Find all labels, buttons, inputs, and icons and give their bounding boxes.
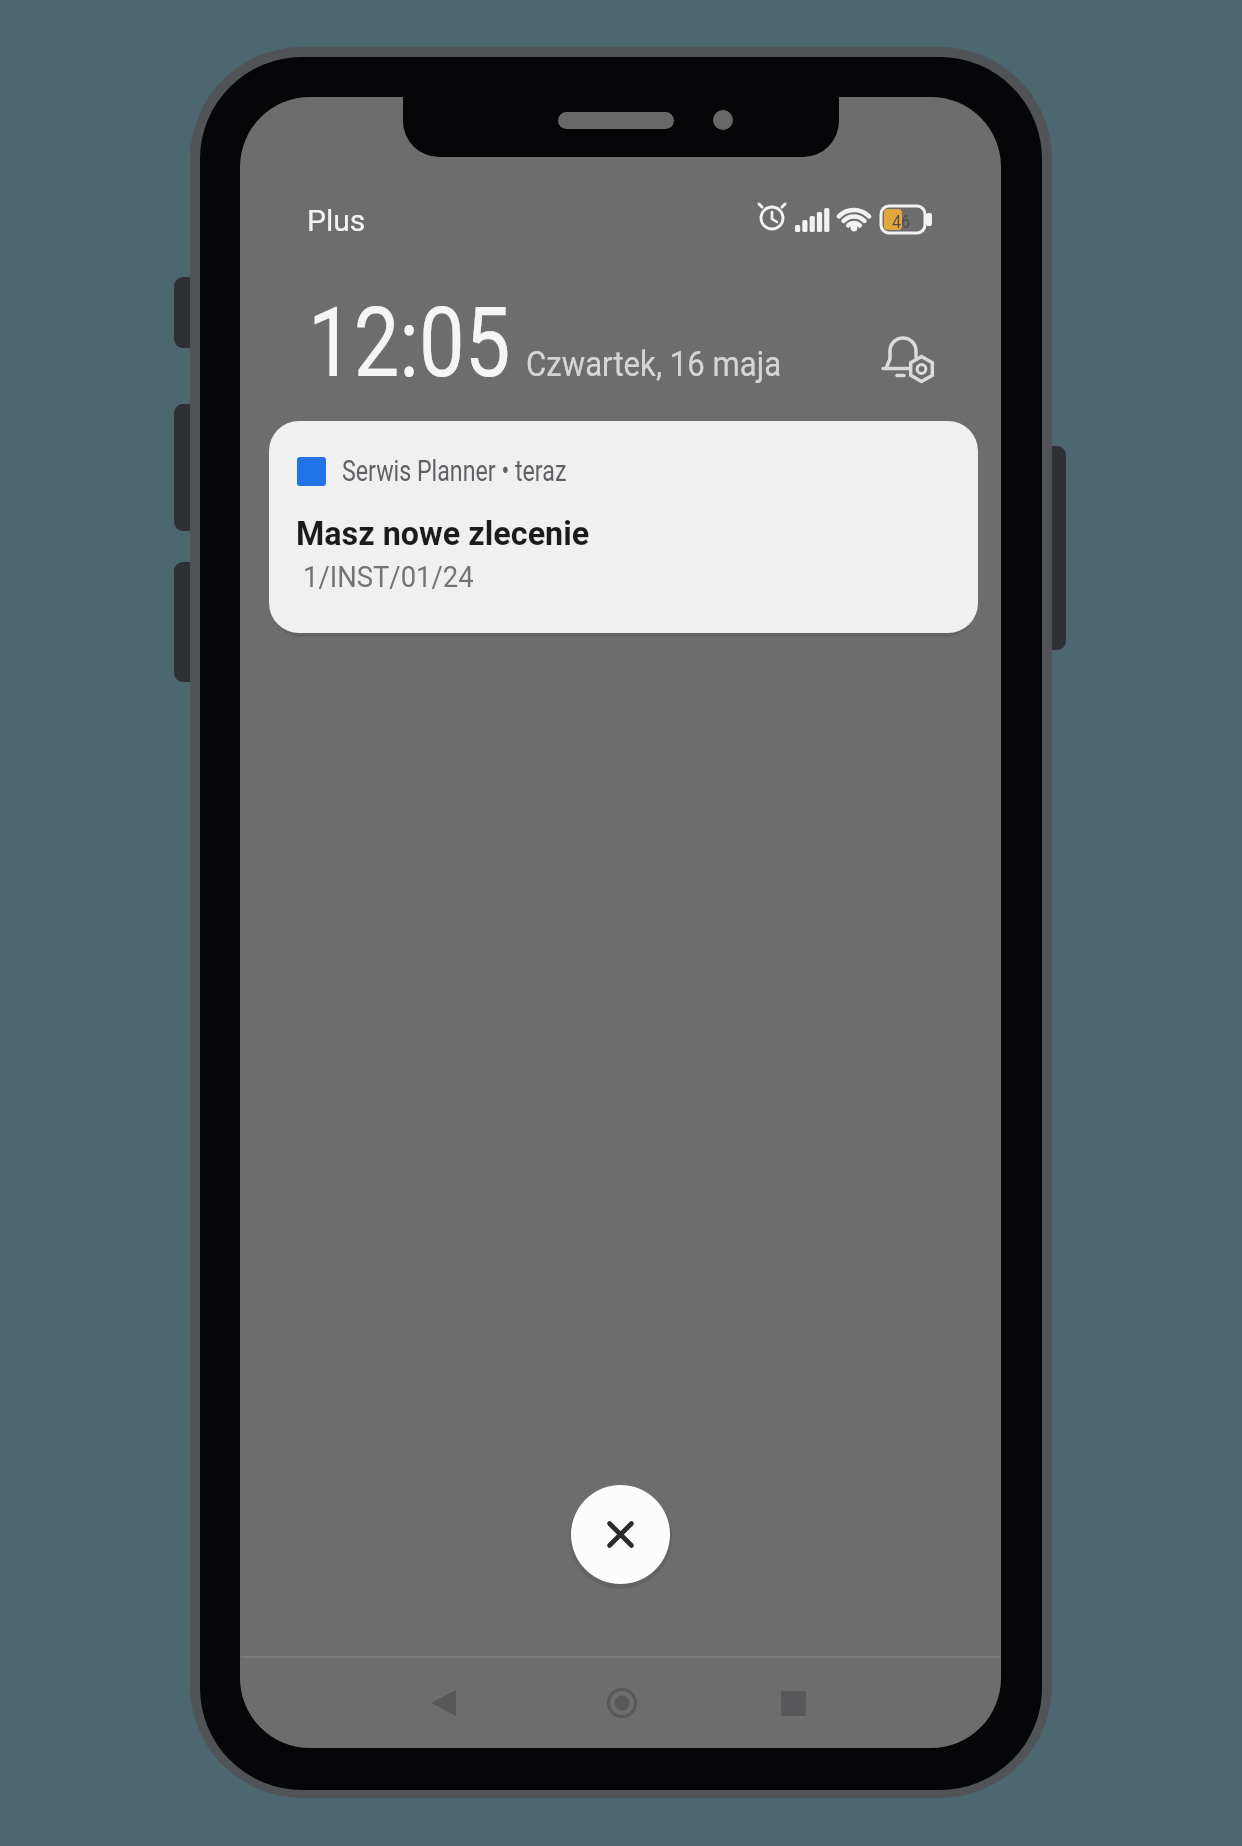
staticText: 46 bbox=[892, 210, 911, 232]
staticText: Serwis Planner • teraz bbox=[342, 454, 567, 488]
staticText: Masz nowe zlecenie bbox=[296, 513, 589, 553]
button[interactable] bbox=[738, 1668, 848, 1738]
staticText: 12:05 bbox=[308, 286, 511, 400]
button[interactable] bbox=[389, 1668, 499, 1738]
staticText: 1/INST/01/24 bbox=[303, 560, 474, 594]
button[interactable] bbox=[571, 1485, 670, 1584]
button[interactable] bbox=[269, 421, 978, 633]
button[interactable] bbox=[872, 330, 954, 396]
button[interactable] bbox=[567, 1668, 677, 1738]
staticText: Czwartek, 16 maja bbox=[526, 344, 781, 385]
staticText: Plus bbox=[307, 203, 366, 238]
